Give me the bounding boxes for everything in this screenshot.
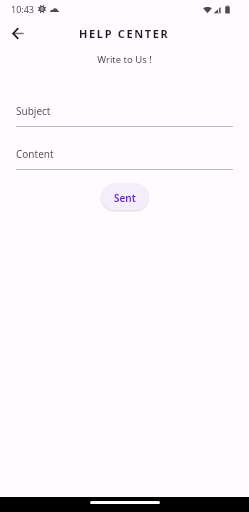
staticText: 10:43 <box>11 3 35 15</box>
staticText: HELP CENTER <box>79 26 170 41</box>
button[interactable]: Content <box>16 140 233 170</box>
button[interactable]: Subject <box>16 97 233 127</box>
staticText: Sent <box>114 191 136 205</box>
button[interactable]: Back <box>7 22 29 44</box>
button[interactable]: Sent <box>101 183 149 210</box>
staticText: Subject <box>16 104 51 118</box>
staticText: Content <box>16 147 54 161</box>
staticText: Write to Us ! <box>0 53 249 66</box>
